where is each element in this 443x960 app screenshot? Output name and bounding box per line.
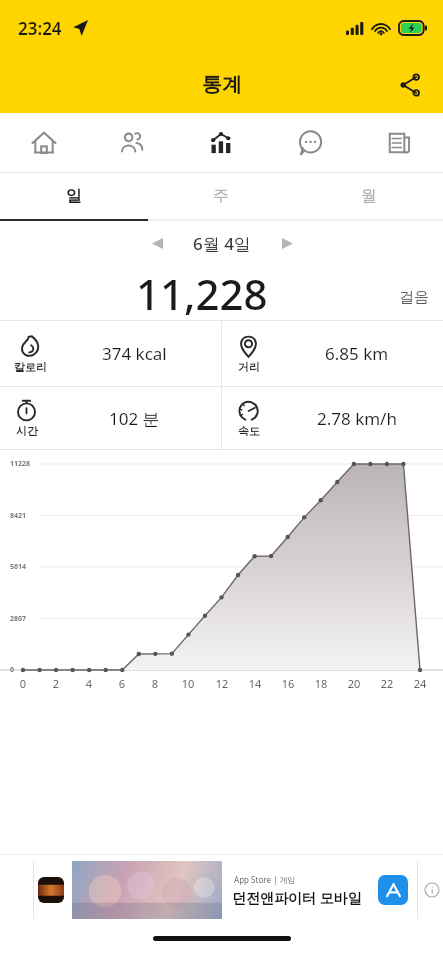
staticText: 18 <box>314 676 328 691</box>
staticText: 23:24 <box>18 17 62 40</box>
staticText: 거리 <box>238 360 260 374</box>
button[interactable]: Next day <box>270 226 304 260</box>
staticText: 11,228 <box>136 265 268 320</box>
staticText: App Store | 게임 <box>232 874 296 885</box>
staticText: 24 <box>413 676 427 691</box>
button[interactable]: 주 <box>147 173 295 219</box>
button[interactable]: 속도 <box>222 387 443 449</box>
staticText: 주 <box>213 186 229 206</box>
button[interactable]: Chat <box>265 113 354 172</box>
staticText: 10 <box>181 676 195 691</box>
staticText: i <box>431 884 434 896</box>
staticText: 6.85 km <box>325 342 389 365</box>
button[interactable]: 일 <box>0 173 147 219</box>
staticText: 2807 <box>10 614 27 624</box>
button[interactable]: App Store | 게임 <box>0 855 443 925</box>
button[interactable]: Friends <box>88 113 176 172</box>
staticText: 16 <box>281 676 295 691</box>
button[interactable]: Share <box>387 62 433 108</box>
button[interactable]: Home <box>0 113 88 172</box>
staticText: 374 kcal <box>102 342 167 365</box>
staticText: 2 <box>49 676 63 691</box>
staticText: 2.78 km/h <box>317 407 397 430</box>
staticText: 12 <box>215 676 229 691</box>
staticText: 월 <box>361 186 377 206</box>
staticText: 시간 <box>16 424 38 438</box>
staticText: 0 <box>10 665 15 675</box>
staticText: 102 분 <box>109 407 160 430</box>
staticText: 0 <box>16 676 30 691</box>
button[interactable]: 시간 <box>0 387 221 449</box>
staticText: 14 <box>248 676 262 691</box>
button[interactable]: 월 <box>295 173 443 219</box>
staticText: 20 <box>347 676 361 691</box>
staticText: 6 <box>115 676 129 691</box>
staticText: 4 <box>82 676 96 691</box>
staticText: 칼로리 <box>14 360 47 374</box>
staticText: 8 <box>148 676 162 691</box>
staticText: 8421 <box>10 511 27 521</box>
button[interactable]: 거리 <box>222 321 443 386</box>
button[interactable]: 칼로리 <box>0 321 221 386</box>
staticText: 22 <box>380 676 394 691</box>
staticText: 걸음 <box>399 288 429 307</box>
staticText: 속도 <box>238 424 260 438</box>
staticText: 6월 4일 <box>193 232 251 255</box>
staticText: 11228 <box>10 459 31 469</box>
button[interactable]: Statistics <box>176 113 265 172</box>
staticText: 통계 <box>202 72 242 97</box>
button[interactable]: Previous day <box>140 226 174 260</box>
staticText: 던전앤파이터 모바일 <box>232 888 362 907</box>
staticText: 일 <box>66 186 82 206</box>
button[interactable]: News <box>354 113 443 172</box>
button[interactable]: Ad info <box>424 882 440 898</box>
staticText: 5614 <box>10 562 27 572</box>
